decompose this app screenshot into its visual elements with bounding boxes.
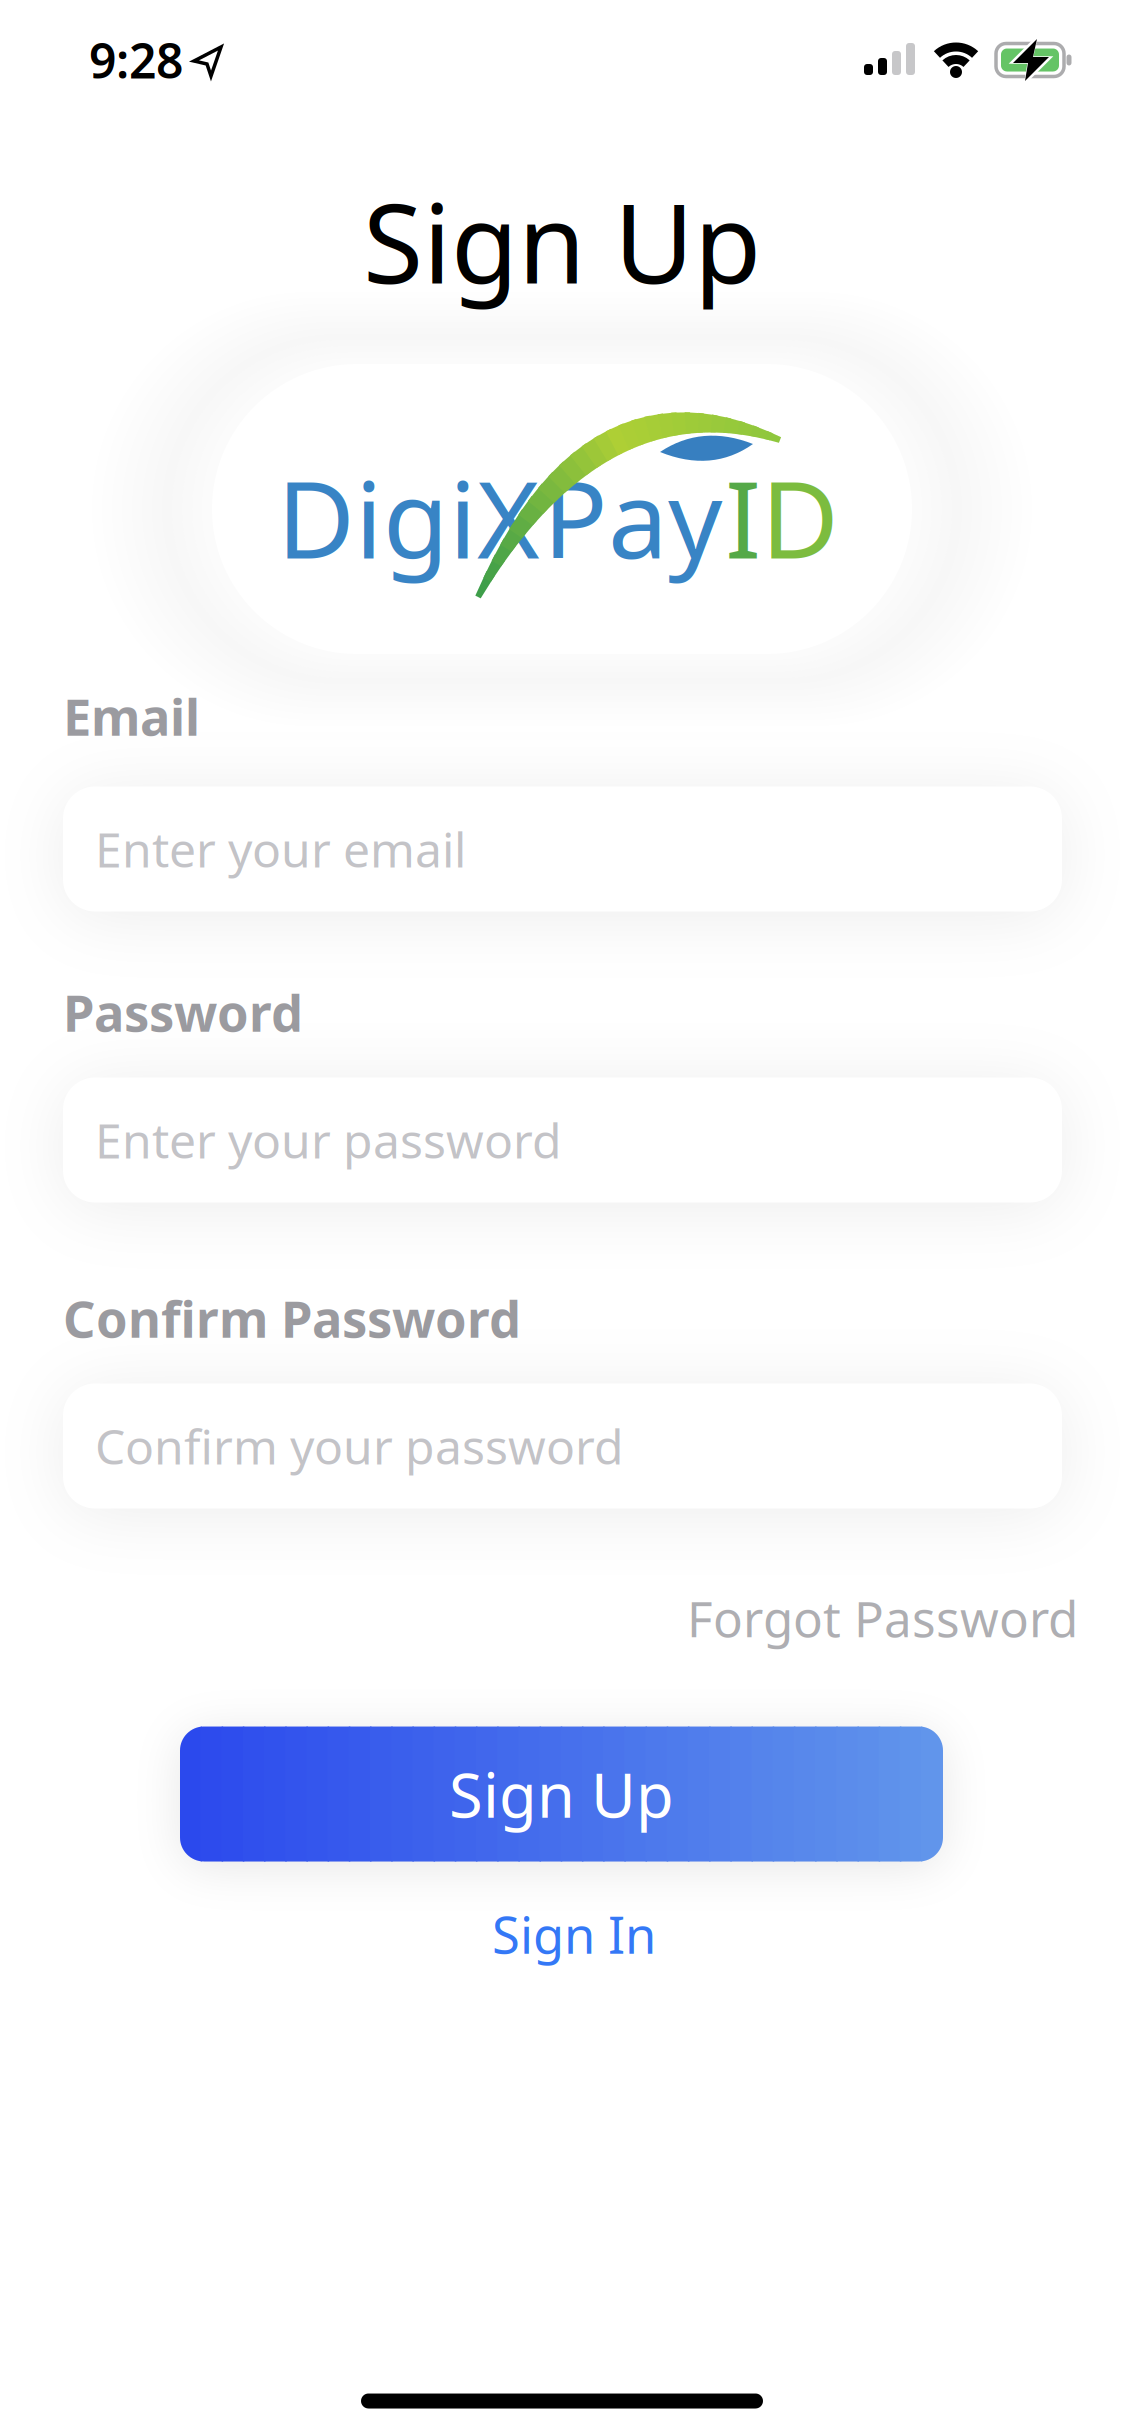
- staticText: Confirm Password: [63, 1284, 521, 1352]
- staticText: Pay: [543, 446, 722, 588]
- staticText: I: [725, 446, 761, 588]
- staticText: Confirm your password: [95, 1414, 624, 1478]
- staticText: Enter your password: [95, 1108, 562, 1172]
- staticText: Sign Up: [363, 168, 761, 314]
- staticText: Enter your email: [95, 817, 466, 881]
- staticText: Password: [63, 978, 303, 1046]
- staticText: Email: [63, 682, 200, 750]
- staticText: D: [761, 446, 839, 588]
- staticText: Sign In: [492, 1900, 656, 1968]
- staticText: Forgot Password: [687, 1585, 1078, 1651]
- staticText: Sign Up: [449, 1753, 674, 1835]
- staticText: 9:28: [89, 28, 183, 92]
- staticText: DigiX: [277, 446, 540, 588]
